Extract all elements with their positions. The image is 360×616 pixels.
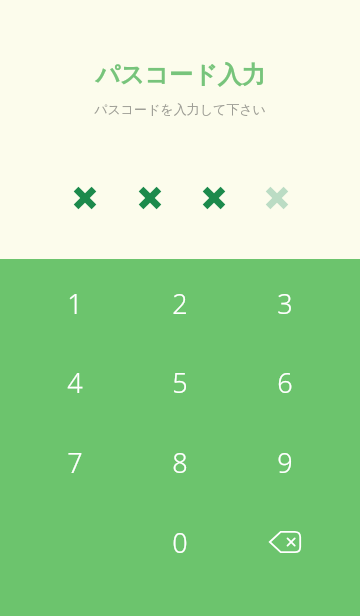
button[interactable]: 8 — [128, 424, 232, 500]
button[interactable]: 2 — [128, 265, 232, 341]
staticText: 4 — [67, 364, 83, 401]
staticText: 9 — [277, 444, 293, 481]
staticText: 2 — [172, 285, 188, 322]
staticText: 8 — [172, 444, 188, 481]
button[interactable]: 1 — [23, 265, 127, 341]
staticText: 0 — [172, 524, 188, 561]
button[interactable]: 6 — [233, 344, 337, 420]
staticText: 6 — [277, 364, 293, 401]
button[interactable]: 5 — [128, 344, 232, 420]
staticText: パスコードを入力して下さい — [94, 101, 266, 117]
button[interactable]: 9 — [233, 424, 337, 500]
staticText: 5 — [172, 364, 188, 401]
staticText: パスコード入力 — [95, 60, 266, 90]
button[interactable]: 4 — [23, 344, 127, 420]
staticText: 3 — [277, 285, 293, 322]
staticText: 1 — [67, 285, 83, 322]
button[interactable]: 3 — [233, 265, 337, 341]
button[interactable]: Backspace — [233, 504, 337, 580]
staticText: 7 — [67, 444, 83, 481]
button[interactable]: 0 — [128, 504, 232, 580]
button[interactable]: 7 — [23, 424, 127, 500]
